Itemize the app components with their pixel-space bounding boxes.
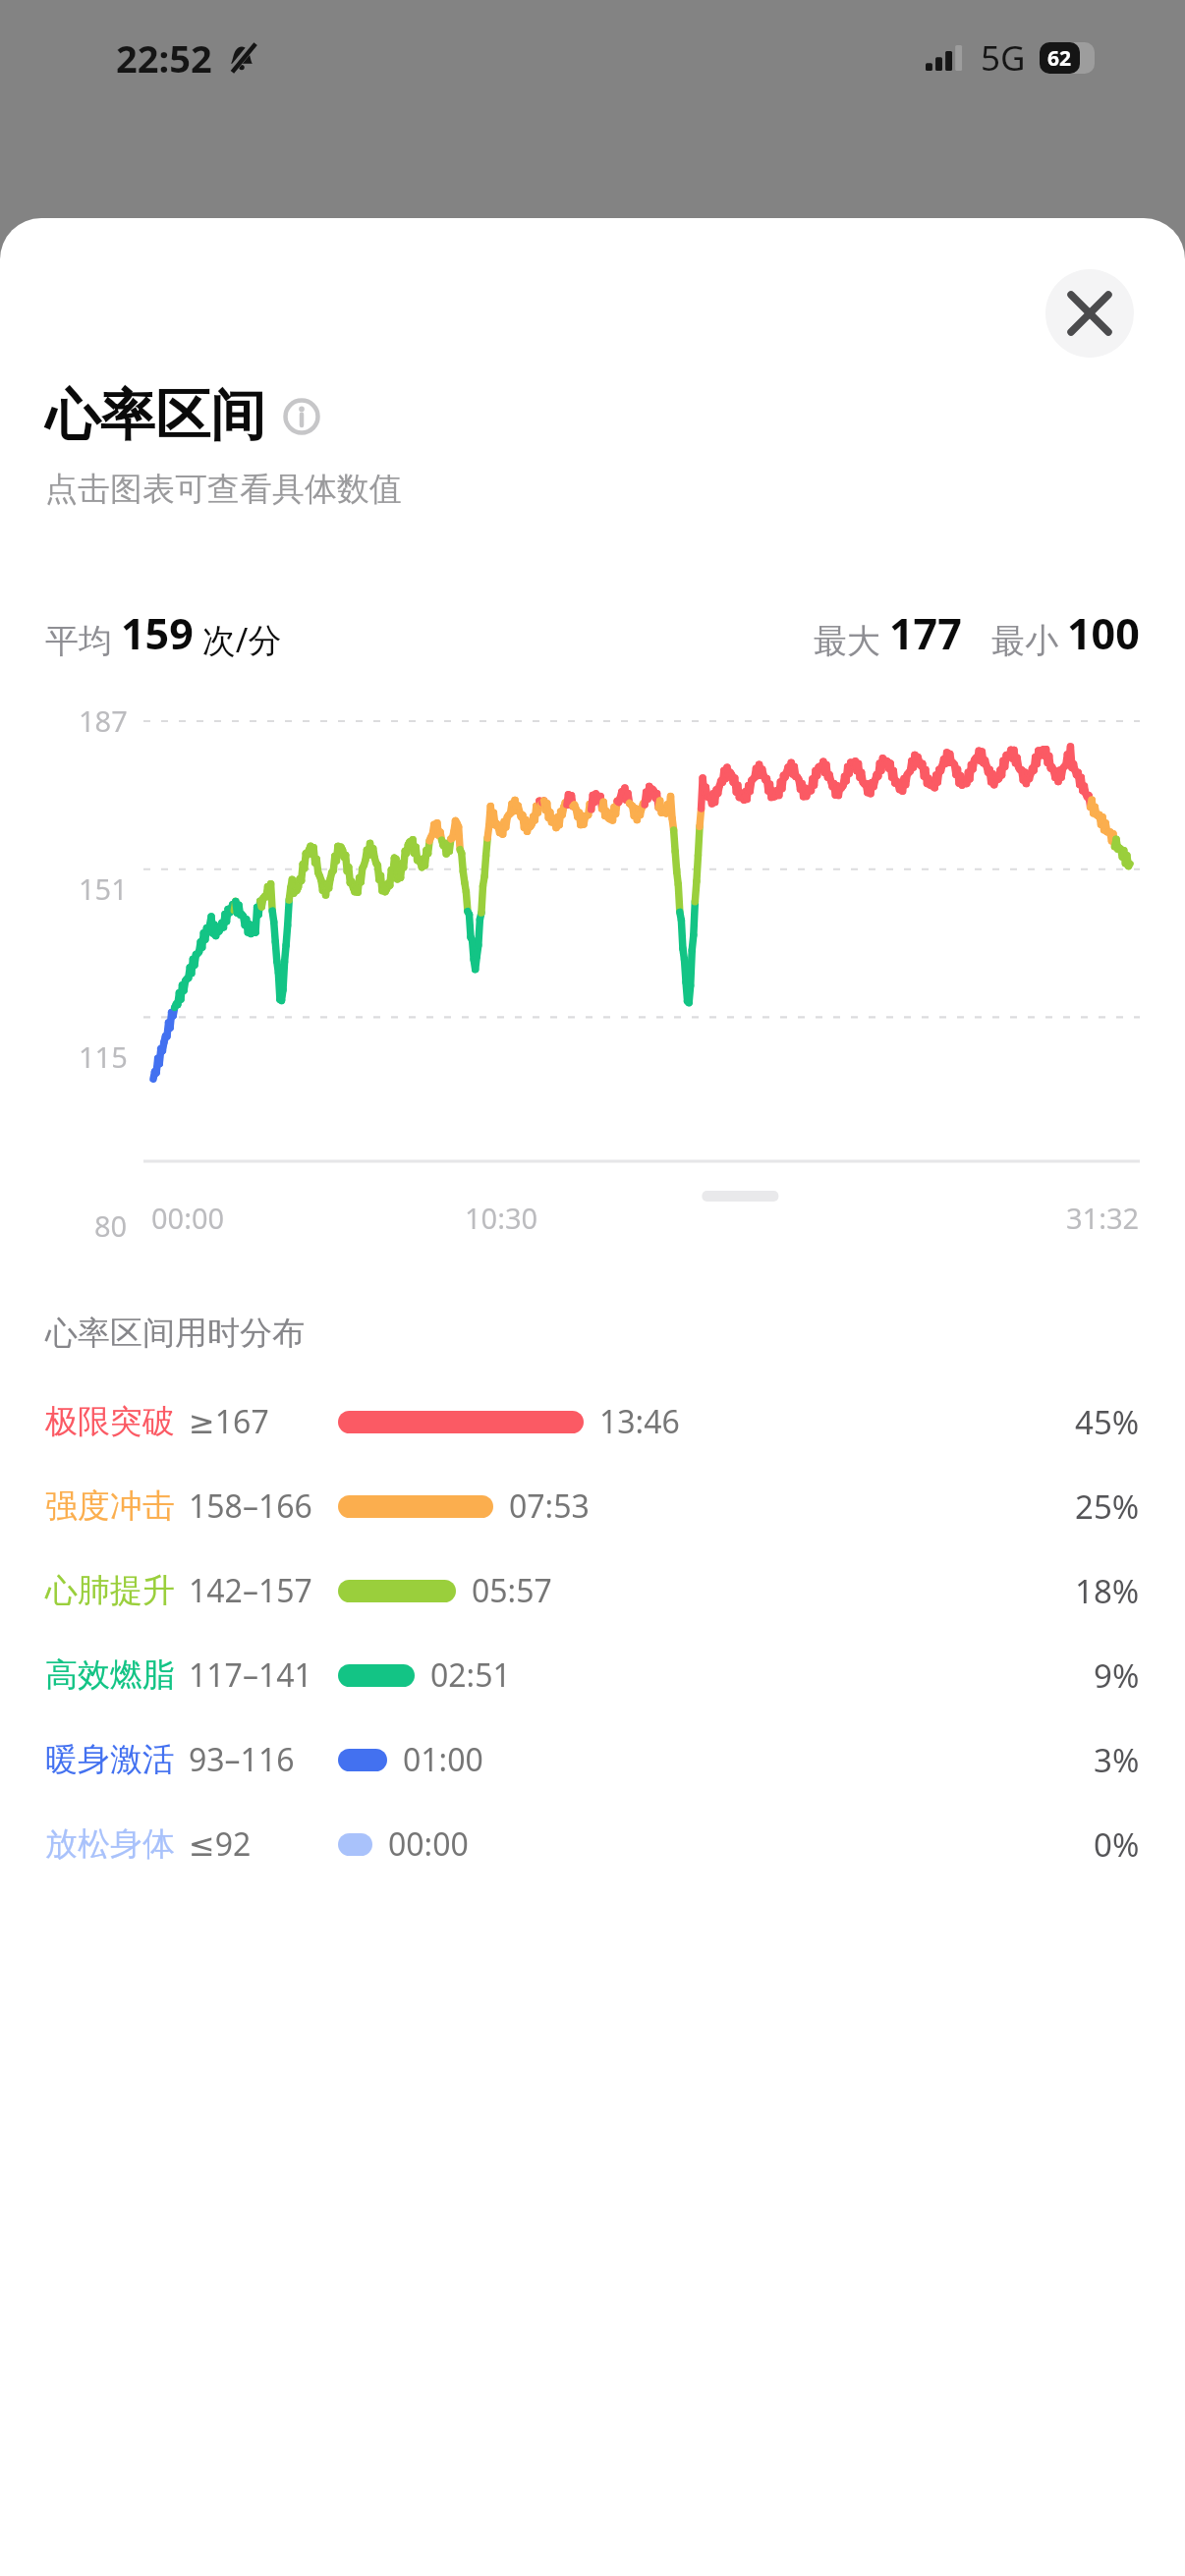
staticText: 高效燃脂 (45, 1654, 175, 1696)
staticText: 00:00 (388, 1822, 469, 1866)
staticText: 放松身体 (45, 1823, 175, 1865)
staticText: 00:00 (151, 1199, 225, 1237)
staticText: 142–157 (189, 1569, 312, 1612)
staticText: 点击图表可查看具体数值 (45, 469, 402, 510)
staticText: 25% (1075, 1484, 1140, 1529)
staticText: 次/分 (194, 617, 282, 662)
button[interactable]: 放松身体 (45, 1802, 1140, 1886)
staticText: 心肺提升 (45, 1570, 175, 1611)
staticText: 10:30 (465, 1199, 538, 1237)
staticText: 强度冲击 (45, 1485, 175, 1527)
staticText: 18% (1075, 1569, 1140, 1613)
staticText: 平均 (45, 617, 121, 662)
staticText: 187 (79, 701, 128, 740)
staticText: 158–166 (189, 1484, 312, 1528)
staticText: 01:00 (403, 1738, 483, 1781)
staticText: 最小 (991, 617, 1067, 662)
staticText: 最大 (814, 617, 889, 662)
staticText: 93–116 (189, 1738, 295, 1781)
button[interactable]: Close (1045, 269, 1134, 358)
staticText: 117–141 (189, 1653, 312, 1697)
staticText: 02:51 (430, 1653, 511, 1697)
staticText: 9% (1094, 1653, 1140, 1698)
staticText: 极限突破 (45, 1401, 175, 1442)
staticText: 心率区间 (45, 381, 265, 451)
staticText: ≥167 (189, 1400, 269, 1443)
button[interactable]: 极限突破 (45, 1379, 1140, 1464)
staticText: 62 (1047, 44, 1072, 73)
staticText: 177 (889, 604, 962, 662)
staticText: 100 (1067, 604, 1140, 662)
button[interactable]: 高效燃脂 (45, 1633, 1140, 1717)
staticText: 心率区间用时分布 (45, 1313, 305, 1354)
staticText: 07:53 (509, 1484, 590, 1528)
staticText: 151 (79, 869, 128, 908)
staticText: 45% (1075, 1400, 1140, 1444)
staticText: ≤92 (189, 1822, 252, 1866)
staticText: 暖身激活 (45, 1739, 175, 1780)
staticText: 5G (981, 34, 1026, 82)
staticText: 0% (1094, 1822, 1140, 1867)
button[interactable]: Info (281, 396, 322, 437)
staticText: 159 (121, 604, 194, 662)
staticText: 31:32 (1066, 1199, 1140, 1237)
staticText: 13:46 (599, 1400, 680, 1443)
staticText: 3% (1094, 1738, 1140, 1782)
button[interactable]: 强度冲击 (45, 1464, 1140, 1548)
staticText: 115 (79, 1037, 128, 1076)
staticText: 80 (94, 1206, 128, 1245)
staticText: 22:52 (116, 32, 212, 84)
button[interactable]: 心肺提升 (45, 1548, 1140, 1633)
button[interactable]: 暖身激活 (45, 1717, 1140, 1802)
staticText: 05:57 (472, 1569, 552, 1612)
